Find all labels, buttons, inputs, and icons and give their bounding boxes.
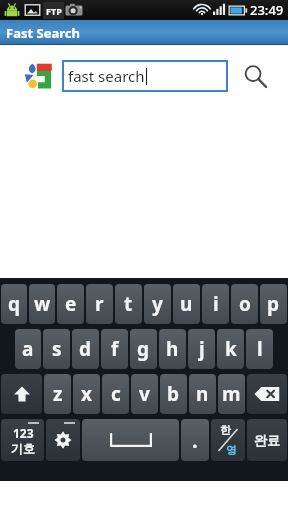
button[interactable]: d (72, 329, 99, 369)
button[interactable]: fast search (62, 60, 228, 92)
staticText: a (22, 336, 34, 362)
button[interactable]: w (29, 284, 55, 324)
button[interactable]: . (181, 419, 209, 461)
staticText: fast search (68, 66, 145, 86)
staticText: g (137, 336, 150, 362)
button[interactable]: y (144, 284, 171, 324)
button[interactable]: x (73, 374, 100, 414)
button[interactable]: Settings (46, 419, 80, 461)
staticText: i (213, 291, 219, 317)
staticText: z (53, 381, 63, 407)
staticText: s (52, 336, 62, 362)
staticText: 123 (13, 425, 34, 441)
staticText: n (196, 381, 209, 407)
button[interactable]: q (1, 284, 27, 324)
button[interactable]: e (57, 284, 84, 324)
staticText: x (81, 381, 92, 407)
staticText: l (257, 336, 263, 362)
button[interactable]: b (160, 374, 187, 414)
staticText: c (111, 381, 121, 407)
staticText: v (139, 381, 150, 407)
staticText: 완료 (254, 432, 280, 448)
button[interactable]: p (260, 284, 287, 324)
button[interactable]: c (102, 374, 129, 414)
button[interactable]: u (173, 284, 200, 324)
staticText: 한 (220, 423, 231, 437)
button[interactable]: g (130, 329, 157, 369)
button[interactable]: o (231, 284, 258, 324)
staticText: m (222, 381, 241, 407)
staticText: 기호 (11, 441, 35, 456)
staticText: p (267, 291, 280, 317)
button[interactable]: i (202, 284, 229, 324)
button[interactable]: Numbers and symbols (1, 419, 44, 461)
button[interactable]: r (86, 284, 113, 324)
button[interactable]: v (131, 374, 158, 414)
staticText: y (152, 291, 163, 317)
staticText: o (239, 291, 251, 317)
staticText: d (79, 336, 92, 362)
staticText: w (34, 291, 51, 317)
button[interactable]: t (115, 284, 142, 324)
button[interactable]: m (218, 374, 245, 414)
button[interactable]: Google (24, 62, 52, 90)
button[interactable]: Space (82, 419, 179, 461)
button[interactable]: s (43, 329, 70, 369)
button[interactable]: Shift (1, 374, 42, 414)
button[interactable]: k (217, 329, 244, 369)
staticText: 23:49 (250, 1, 284, 19)
staticText: 영 (226, 443, 237, 457)
button[interactable]: Search (240, 61, 270, 91)
staticText: h (166, 336, 179, 362)
button[interactable]: h (159, 329, 186, 369)
staticText: q (8, 291, 21, 317)
button[interactable]: Korean English toggle (211, 419, 245, 461)
button[interactable]: 완료 (247, 419, 287, 461)
staticText: t (124, 291, 133, 317)
staticText: Fast Search (6, 24, 80, 42)
button[interactable]: Delete (247, 374, 287, 414)
button[interactable]: f (101, 329, 128, 369)
button[interactable]: n (189, 374, 216, 414)
button[interactable]: l (246, 329, 273, 369)
button[interactable]: a (15, 329, 41, 369)
staticText: r (95, 291, 104, 317)
staticText: j (199, 336, 205, 362)
button[interactable]: z (44, 374, 71, 414)
staticText: . (192, 427, 198, 454)
button[interactable]: j (188, 329, 215, 369)
staticText: FTP (46, 5, 62, 17)
staticText: k (225, 336, 237, 362)
staticText: f (111, 336, 119, 362)
staticText: b (167, 381, 180, 407)
staticText: u (180, 291, 193, 317)
staticText: e (65, 291, 77, 317)
